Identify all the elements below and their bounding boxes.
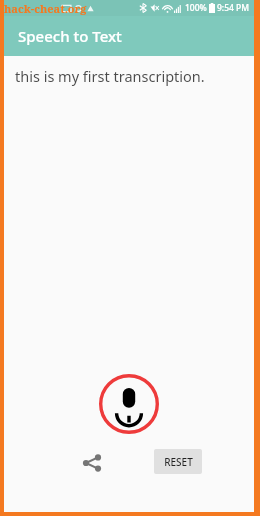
button[interactable]: RESET (154, 449, 202, 474)
staticText: RESET (164, 455, 193, 469)
button[interactable]: Share (76, 447, 108, 479)
staticText: hack-cheat.org (4, 1, 87, 16)
staticText: this is my first transcription. (15, 66, 205, 86)
staticText: 100% (185, 2, 207, 14)
button[interactable]: Speech to Text (4, 16, 254, 56)
button[interactable]: Start recording (98, 373, 160, 435)
staticText: Speech to Text (18, 26, 122, 46)
staticText: 9:54 PM (217, 2, 250, 14)
